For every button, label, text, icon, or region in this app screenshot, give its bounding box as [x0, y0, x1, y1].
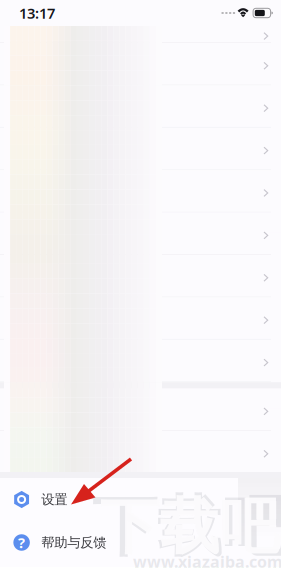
staticText: 下载吧: [92, 487, 281, 567]
staticText: 帮助与反馈: [41, 534, 106, 551]
staticText: 设置: [41, 491, 67, 508]
staticText: 下载吧: [99, 490, 279, 564]
button[interactable]: [0, 213, 281, 255]
button[interactable]: [0, 389, 281, 431]
button[interactable]: [0, 297, 281, 340]
button[interactable]: [0, 128, 281, 170]
staticText: 13:17: [19, 3, 55, 23]
button[interactable]: [0, 431, 281, 473]
button[interactable]: 设置: [0, 478, 281, 521]
button[interactable]: [0, 170, 281, 213]
button[interactable]: [0, 340, 281, 382]
button[interactable]: [0, 43, 281, 85]
staticText: ?: [18, 533, 25, 552]
button[interactable]: [0, 255, 281, 297]
button[interactable]: [0, 26, 281, 43]
button[interactable]: ?: [0, 521, 281, 564]
staticText: www.xiazaiba.com: [133, 551, 281, 572]
button[interactable]: [0, 85, 281, 128]
